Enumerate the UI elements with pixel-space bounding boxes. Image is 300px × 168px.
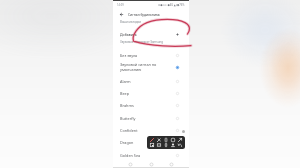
button[interactable]: Crop [149, 142, 155, 148]
staticText: Ваши мелодии [120, 20, 142, 24]
staticText: Добавить [120, 32, 137, 37]
staticText: Golden Sea [120, 153, 141, 158]
staticText: Сигнал будильника [128, 12, 160, 16]
staticText: Без звука [120, 53, 138, 58]
button[interactable]: Brahms [113, 99, 189, 111]
staticText: Brahms [120, 103, 134, 108]
button[interactable]: Arrow [177, 137, 183, 142]
button[interactable]: Back [117, 10, 125, 18]
button[interactable]: Collapse toolbar [182, 130, 185, 133]
staticText: Confident [120, 128, 138, 133]
button[interactable]: Recent apps [127, 161, 134, 168]
button[interactable]: Marker [163, 142, 169, 148]
button[interactable]: Text [156, 142, 162, 148]
staticText: Butterfly [120, 116, 136, 121]
button[interactable]: Beep [113, 87, 189, 99]
button[interactable]: Home [148, 161, 155, 168]
button[interactable]: Без звука [113, 49, 189, 61]
staticText: Alarm [120, 79, 131, 84]
button[interactable]: Select [170, 137, 176, 142]
staticText: Beep [120, 91, 130, 96]
staticText: Звуковой сигнал по [120, 62, 157, 67]
button[interactable]: Undo [177, 142, 183, 148]
staticText: умолчанию [120, 67, 142, 72]
button[interactable]: Butterfly [113, 112, 189, 124]
button[interactable]: Back [168, 161, 175, 168]
button[interactable]: Confident [113, 124, 189, 136]
button[interactable]: Highlighter [156, 137, 162, 142]
button[interactable]: Добавить [113, 29, 189, 39]
staticText: 14:09 [117, 3, 124, 7]
button[interactable]: Eraser [163, 137, 169, 142]
button[interactable]: Stamp [170, 142, 176, 148]
button[interactable]: Pen [149, 137, 155, 142]
button[interactable]: Golden Sea [113, 149, 189, 161]
staticText: Dragon [120, 140, 134, 145]
button[interactable]: Звуковой сигнал по [113, 60, 189, 74]
button[interactable]: Dragon [113, 136, 189, 148]
staticText: ✉●⊙⊙ ●4G ▲ ▮▮76% [158, 3, 185, 7]
staticText: Звуковые сигналы от Samsung [120, 40, 164, 44]
button[interactable]: Alarm [113, 75, 189, 87]
